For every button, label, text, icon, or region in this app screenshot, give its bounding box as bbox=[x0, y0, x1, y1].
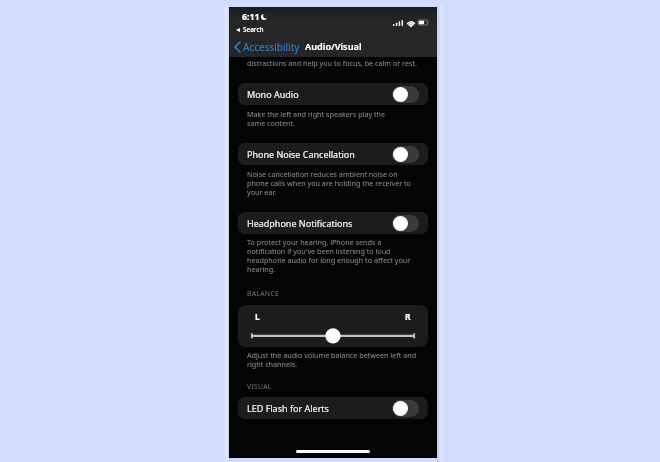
staticText: To protect your hearing, iPhone sends a … bbox=[247, 237, 411, 275]
button[interactable]: Mono Audio bbox=[238, 83, 428, 105]
button[interactable]: Accessibility bbox=[234, 40, 301, 54]
staticText: Make the left and right speakers play th… bbox=[247, 109, 386, 129]
staticText: Phone Noise Cancellation bbox=[247, 148, 355, 160]
staticText: BALANCE bbox=[247, 289, 280, 298]
button[interactable]: Toggle bbox=[392, 146, 419, 163]
staticText: 6:11 bbox=[242, 11, 260, 23]
staticText: LED Flash for Alerts bbox=[247, 402, 329, 414]
staticText: Accessibility bbox=[243, 40, 300, 54]
staticText: Headphone Notifications bbox=[247, 217, 353, 229]
staticText: Search bbox=[243, 25, 264, 34]
staticText: R bbox=[405, 311, 411, 323]
button[interactable]: Toggle bbox=[392, 86, 419, 103]
button[interactable]: Toggle bbox=[392, 215, 419, 232]
button[interactable]: Audio balance slider bbox=[238, 331, 428, 347]
staticText: distractions and help you to focus, be c… bbox=[247, 58, 417, 68]
button[interactable]: Phone Noise Cancellation bbox=[238, 143, 428, 165]
staticText: Audio/Visual bbox=[305, 40, 362, 53]
button[interactable]: Toggle bbox=[392, 400, 419, 417]
button[interactable]: LED Flash for Alerts bbox=[238, 397, 428, 419]
staticText: L bbox=[255, 311, 260, 323]
button[interactable]: Headphone Notifications bbox=[238, 212, 428, 234]
staticText: Noise cancellation reduces ambient noise… bbox=[247, 169, 411, 198]
staticText: VISUAL bbox=[247, 382, 272, 391]
staticText: Mono Audio bbox=[247, 88, 299, 100]
staticText: Adjust the audio volume balance between … bbox=[247, 350, 417, 370]
